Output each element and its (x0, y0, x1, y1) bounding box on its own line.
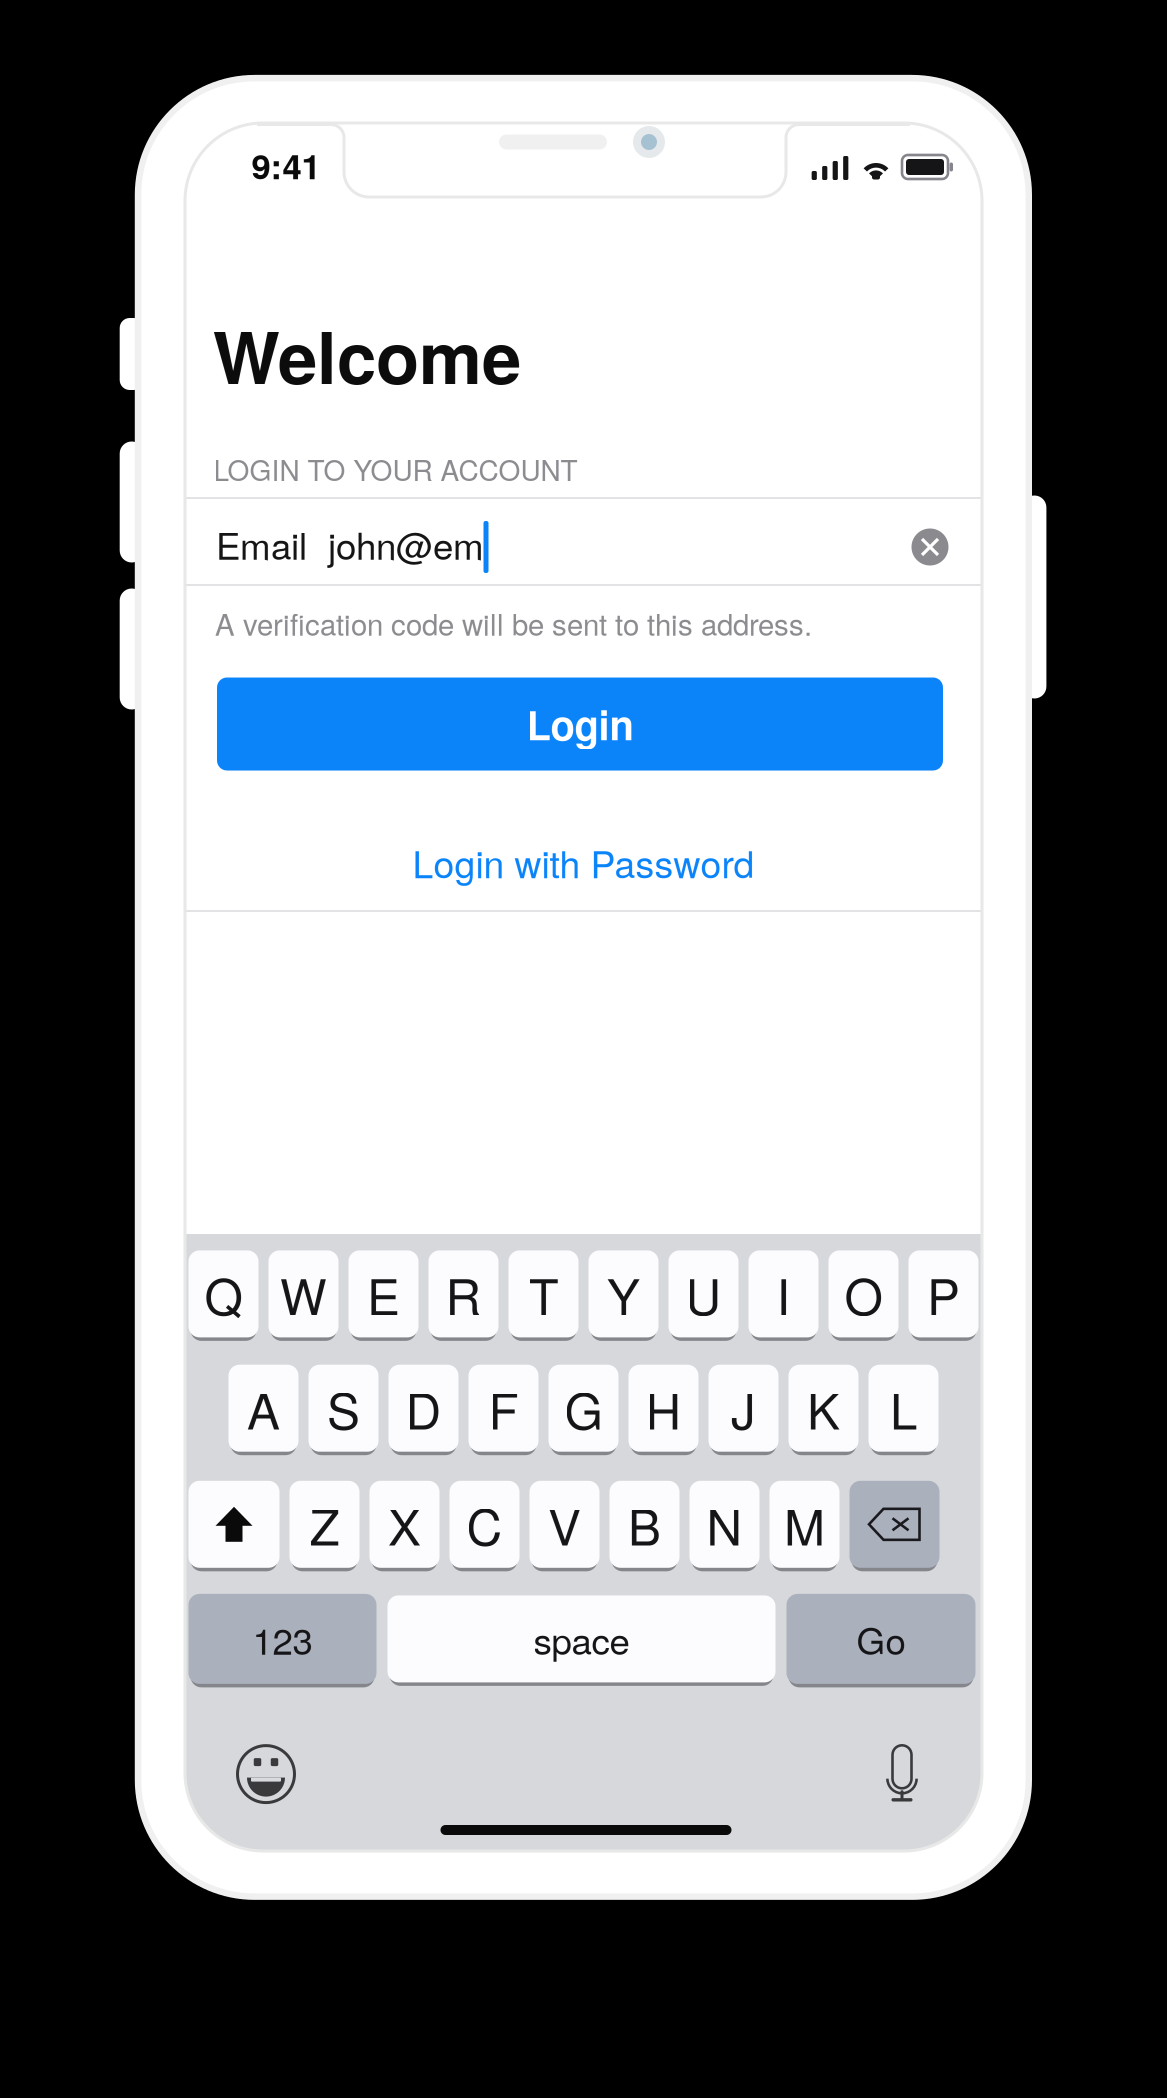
button[interactable]: X (369, 1481, 439, 1568)
staticText: G (564, 1373, 602, 1443)
button[interactable]: Go (786, 1594, 975, 1684)
button[interactable]: C (449, 1481, 519, 1568)
staticText: S (327, 1373, 360, 1443)
staticText: Y (607, 1259, 640, 1329)
staticText: Login with Password (412, 835, 754, 889)
staticText: I (776, 1259, 790, 1329)
staticText: W (280, 1259, 327, 1329)
button[interactable]: R (428, 1250, 498, 1337)
staticText: 123 (252, 1613, 312, 1665)
button[interactable]: D (388, 1365, 458, 1452)
button[interactable]: U (668, 1250, 738, 1337)
button[interactable]: F (468, 1365, 538, 1452)
staticText: 9:41 (251, 140, 320, 190)
staticText: Email (216, 518, 307, 570)
button[interactable]: S (308, 1365, 378, 1452)
staticText: Z (309, 1489, 339, 1560)
staticText: A verification code will be sent to this… (215, 602, 812, 644)
button[interactable]: M (769, 1481, 839, 1568)
button[interactable]: Clear text (905, 522, 955, 572)
staticText: space (533, 1613, 629, 1665)
staticText: U (685, 1259, 721, 1329)
staticText: L (890, 1373, 917, 1443)
button[interactable]: P (908, 1250, 978, 1337)
button[interactable]: I (748, 1250, 818, 1337)
staticText: D (405, 1373, 441, 1443)
staticText: Go (856, 1613, 905, 1665)
staticText: Welcome (213, 304, 521, 406)
staticText: john@em (328, 518, 484, 570)
staticText: X (388, 1489, 421, 1560)
staticText: LOGIN TO YOUR ACCOUNT (213, 449, 577, 489)
button[interactable]: H (628, 1365, 698, 1452)
button[interactable]: Login (217, 677, 943, 770)
button[interactable]: Y (588, 1250, 658, 1337)
staticText: B (628, 1489, 661, 1560)
button[interactable]: J (708, 1365, 778, 1452)
staticText: M (784, 1489, 825, 1560)
button[interactable]: A (228, 1365, 298, 1452)
staticText: E (367, 1259, 400, 1329)
button[interactable]: Delete (849, 1481, 939, 1568)
button[interactable]: O (828, 1250, 898, 1337)
button[interactable]: Z (289, 1481, 359, 1568)
button[interactable]: K (788, 1365, 858, 1452)
button[interactable]: space (387, 1595, 775, 1682)
staticText: F (488, 1373, 518, 1443)
button[interactable]: W (268, 1250, 338, 1337)
button[interactable]: V (529, 1481, 599, 1568)
button[interactable]: Dictation (874, 1742, 930, 1804)
staticText: R (445, 1259, 481, 1329)
staticText: J (731, 1373, 756, 1443)
staticText: A (247, 1373, 280, 1443)
staticText: Q (204, 1259, 242, 1329)
button[interactable]: Emoji keyboard (235, 1743, 297, 1805)
button[interactable]: Login with Password (185, 806, 982, 918)
staticText: C (466, 1489, 502, 1560)
button[interactable]: Shift (188, 1481, 279, 1568)
staticText: V (548, 1489, 581, 1560)
button[interactable]: Q (188, 1250, 258, 1337)
button[interactable]: L (868, 1365, 938, 1452)
button[interactable]: B (609, 1481, 679, 1568)
staticText: K (807, 1373, 840, 1443)
staticText: T (528, 1259, 558, 1329)
button[interactable]: E (348, 1250, 418, 1337)
staticText: H (645, 1373, 681, 1443)
button[interactable]: G (548, 1365, 618, 1452)
button[interactable]: 123 (188, 1594, 376, 1684)
button[interactable]: T (508, 1250, 578, 1337)
button[interactable]: N (689, 1481, 759, 1568)
staticText: N (706, 1489, 742, 1560)
staticText: O (844, 1259, 882, 1329)
staticText: Login (526, 695, 633, 753)
staticText: P (927, 1259, 960, 1329)
